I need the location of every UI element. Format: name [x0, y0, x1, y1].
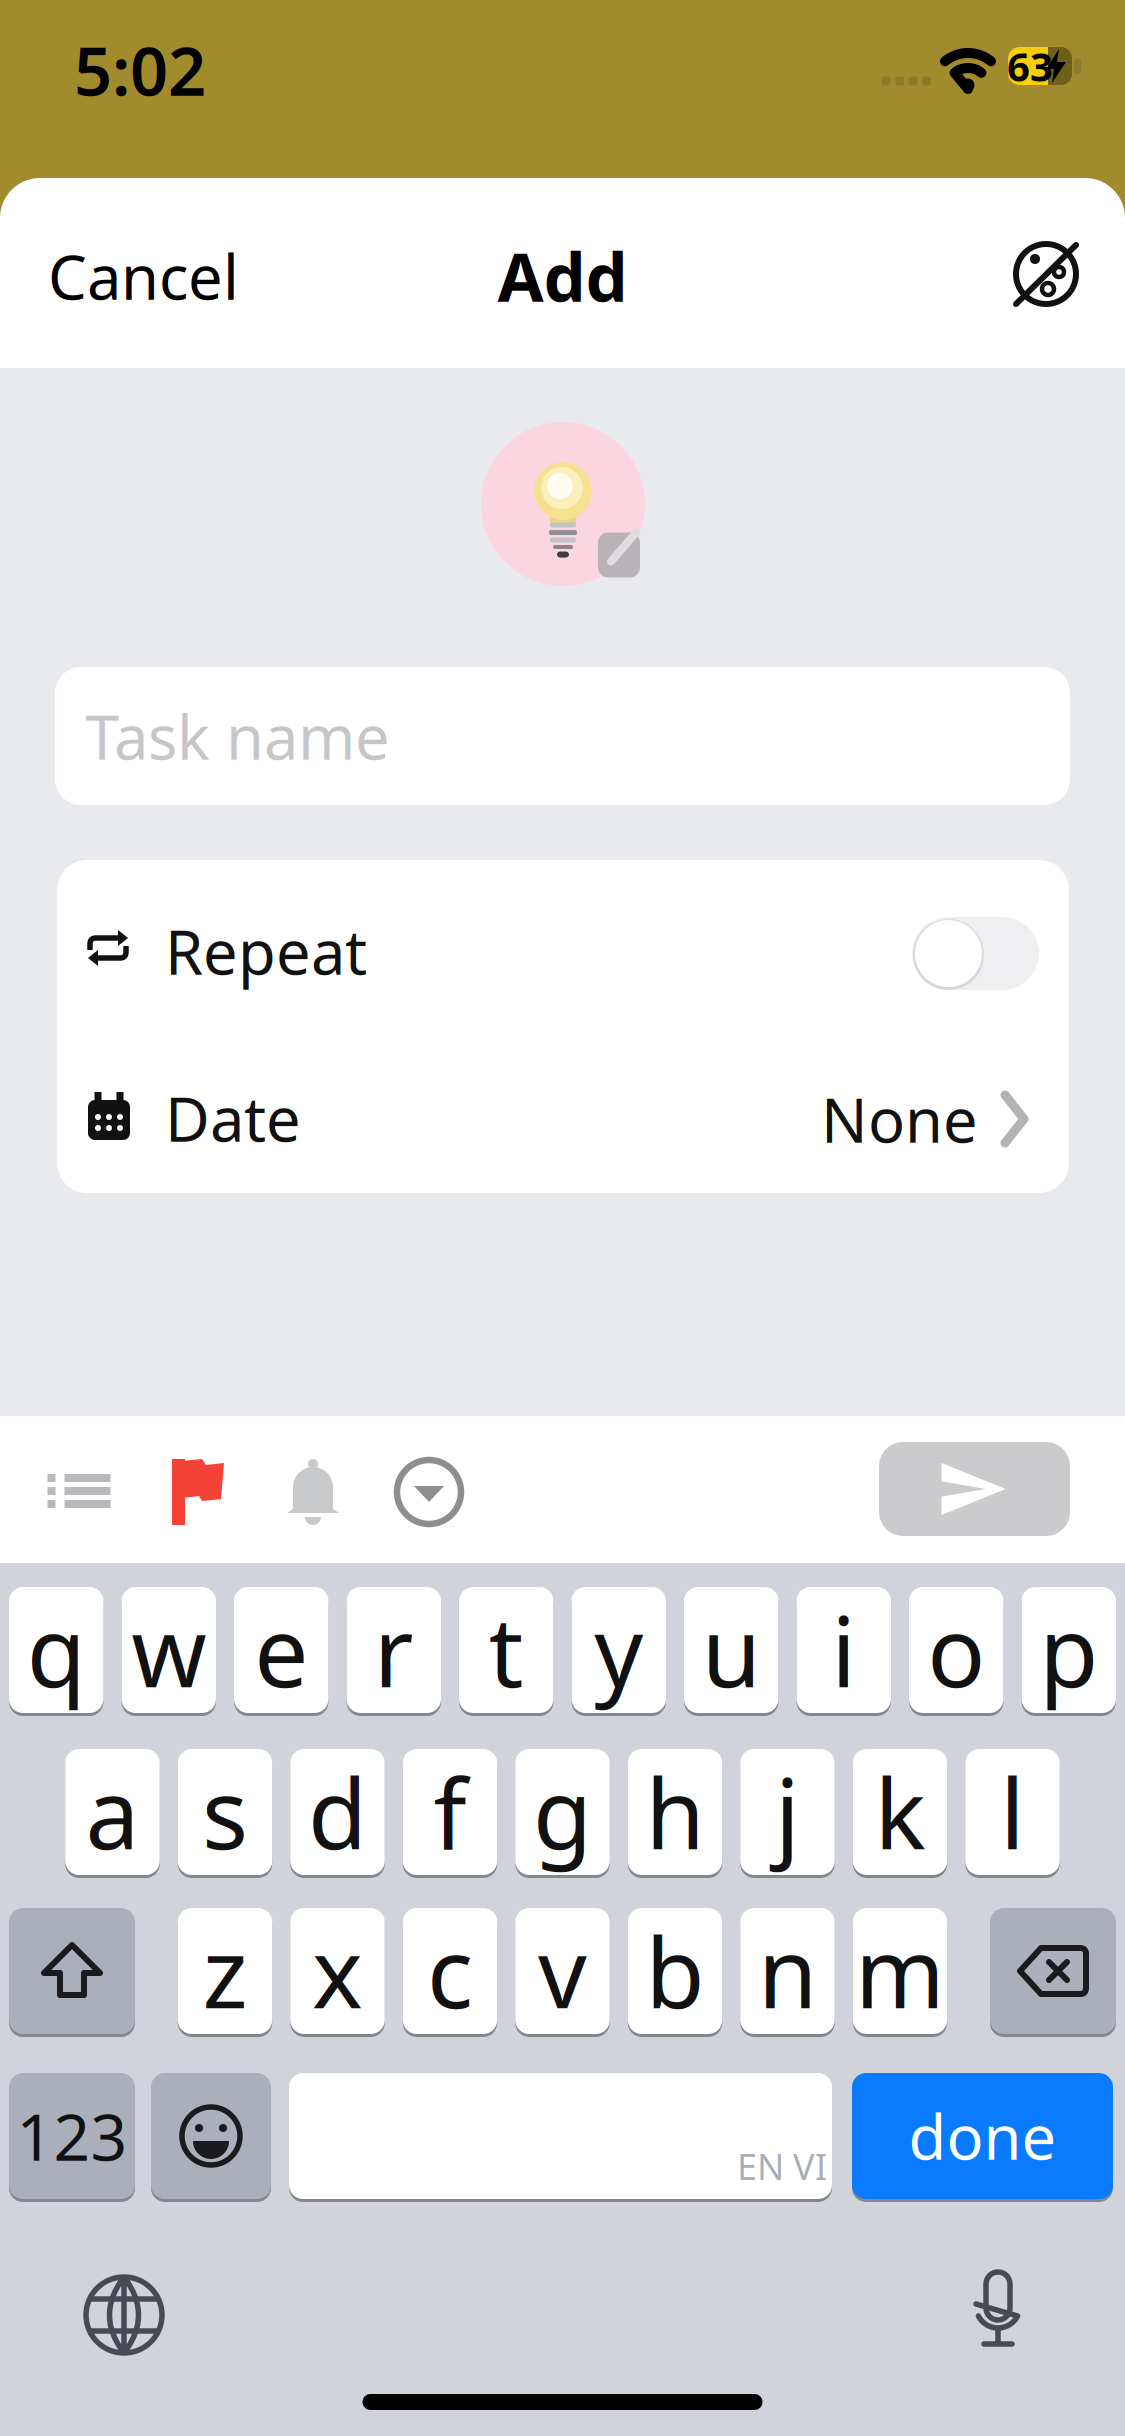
button[interactable]: w — [121, 1587, 216, 1713]
staticText: g — [533, 1748, 592, 1876]
staticText: q — [27, 1586, 86, 1714]
button[interactable]: Priority — [163, 1452, 233, 1532]
staticText: i — [831, 1586, 856, 1714]
button[interactable]: a — [65, 1749, 160, 1875]
staticText: k — [874, 1748, 925, 1876]
staticText: t — [489, 1586, 524, 1714]
staticText: Add — [497, 232, 627, 320]
button[interactable]: h — [628, 1749, 722, 1875]
button[interactable]: z — [178, 1908, 272, 2034]
button[interactable]: Date — [330, 1054, 1030, 1184]
button[interactable]: Dictate — [958, 2266, 1038, 2358]
staticText: c — [427, 1907, 473, 2035]
button[interactable]: Emoji — [151, 2073, 271, 2199]
staticText: v — [538, 1907, 587, 2035]
button[interactable]: s — [178, 1749, 272, 1875]
button[interactable]: x — [290, 1908, 385, 2034]
button[interactable]: k — [853, 1749, 947, 1875]
staticText: p — [1039, 1586, 1098, 1714]
button[interactable]: Cancel — [48, 231, 308, 321]
button[interactable]: Delete — [990, 1908, 1116, 2034]
button[interactable]: p — [1021, 1587, 1116, 1713]
button[interactable]: 123 — [9, 2073, 135, 2199]
staticText: EN VI — [737, 2142, 827, 2190]
button[interactable]: Edit icon — [475, 416, 651, 592]
button[interactable]: Shift — [9, 1908, 135, 2034]
button[interactable]: q — [9, 1587, 103, 1713]
staticText: h — [645, 1748, 704, 1876]
button[interactable]: e — [234, 1587, 328, 1713]
staticText: j — [775, 1748, 800, 1876]
staticText: b — [645, 1907, 704, 2035]
staticText: Cancel — [48, 235, 239, 317]
button[interactable]: o — [909, 1587, 1003, 1713]
button[interactable]: r — [346, 1587, 441, 1713]
staticText: 63 — [1007, 39, 1053, 92]
button[interactable]: f — [403, 1749, 497, 1875]
button[interactable]: v — [515, 1908, 610, 2034]
staticText: Repeat — [165, 910, 367, 992]
staticText: r — [374, 1586, 414, 1714]
staticText: a — [85, 1748, 139, 1876]
button[interactable]: Send — [879, 1442, 1070, 1536]
staticText: x — [312, 1907, 363, 2035]
staticText: Date — [165, 1077, 301, 1159]
staticText: 123 — [16, 2093, 127, 2178]
button[interactable]: u — [684, 1587, 778, 1713]
staticText: f — [433, 1748, 466, 1876]
button[interactable]: b — [628, 1908, 722, 2034]
button[interactable]: Space — [289, 2073, 832, 2199]
button[interactable]: done — [852, 2073, 1113, 2199]
button[interactable]: y — [571, 1587, 666, 1713]
staticText: o — [927, 1586, 985, 1714]
button[interactable]: d — [290, 1749, 385, 1875]
button[interactable]: n — [740, 1908, 835, 2034]
button[interactable]: Reminder — [278, 1452, 348, 1532]
button[interactable]: Collapse — [389, 1452, 469, 1532]
button[interactable]: Task name — [55, 667, 1070, 805]
button[interactable]: m — [853, 1908, 947, 2034]
staticText: Task name — [85, 695, 390, 777]
button[interactable]: c — [403, 1908, 497, 2034]
staticText: done — [908, 2095, 1056, 2177]
staticText: 5:02 — [74, 26, 206, 114]
staticText: s — [202, 1748, 248, 1876]
button[interactable]: Theme — [998, 227, 1094, 323]
staticText: z — [202, 1907, 247, 2035]
staticText: n — [758, 1907, 817, 2035]
button[interactable]: Repeat — [912, 917, 1039, 990]
staticText: d — [308, 1748, 367, 1876]
staticText: u — [702, 1586, 761, 1714]
staticText: l — [1000, 1748, 1025, 1876]
button[interactable]: g — [515, 1749, 610, 1875]
button[interactable]: Lists — [39, 1451, 119, 1531]
staticText: y — [594, 1586, 643, 1714]
staticText: e — [254, 1586, 308, 1714]
button[interactable]: i — [796, 1587, 891, 1713]
button[interactable]: Next keyboard — [79, 2270, 169, 2360]
staticText: w — [131, 1586, 206, 1714]
staticText: m — [855, 1907, 945, 2035]
staticText: None — [821, 1078, 978, 1160]
button[interactable]: j — [740, 1749, 835, 1875]
button[interactable]: l — [965, 1749, 1060, 1875]
button[interactable]: t — [459, 1587, 553, 1713]
